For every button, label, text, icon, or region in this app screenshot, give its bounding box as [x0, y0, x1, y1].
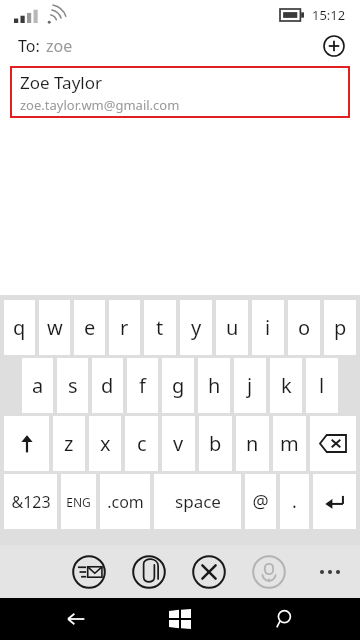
- button[interactable]: .: [280, 474, 309, 529]
- staticText: e: [84, 314, 96, 341]
- staticText: l: [319, 372, 325, 399]
- staticText: r: [120, 314, 129, 341]
- button[interactable]: u: [216, 300, 248, 355]
- staticText: x: [100, 430, 111, 457]
- button[interactable]: Voice input: [250, 553, 288, 591]
- staticText: b: [209, 430, 222, 457]
- button[interactable]: Close: [190, 553, 228, 591]
- staticText: w: [47, 314, 63, 341]
- button[interactable]: k: [270, 358, 302, 413]
- button[interactable]: space: [154, 474, 241, 529]
- button[interactable]: Zoe Taylor: [10, 66, 350, 118]
- staticText: q: [13, 314, 26, 341]
- button[interactable]: p: [324, 300, 356, 355]
- button[interactable]: l: [306, 358, 338, 413]
- button[interactable]: f: [127, 358, 158, 413]
- staticText: @: [252, 489, 269, 514]
- staticText: z: [64, 430, 74, 457]
- button[interactable]: Start: [162, 601, 198, 637]
- button[interactable]: c: [125, 416, 158, 471]
- staticText: s: [68, 372, 78, 399]
- button[interactable]: r: [109, 300, 140, 355]
- button[interactable]: q: [4, 300, 35, 355]
- staticText: ENG: [66, 494, 91, 510]
- staticText: To:: [18, 35, 40, 57]
- staticText: o: [298, 314, 311, 341]
- staticText: zoe.taylor.wm@gmail.com: [20, 96, 180, 114]
- button[interactable]: j: [234, 358, 266, 413]
- button[interactable]: y: [180, 300, 212, 355]
- staticText: k: [281, 372, 292, 399]
- button[interactable]: Back: [58, 601, 94, 637]
- button[interactable]: Backspace: [310, 416, 356, 471]
- staticText: j: [247, 372, 253, 399]
- button[interactable]: More options: [314, 564, 346, 580]
- staticText: d: [101, 372, 114, 399]
- staticText: t: [156, 314, 164, 341]
- button[interactable]: t: [144, 300, 176, 355]
- staticText: g: [172, 372, 185, 399]
- staticText: Zoe Taylor: [20, 71, 103, 94]
- button[interactable]: e: [74, 300, 105, 355]
- button[interactable]: ENG: [61, 474, 96, 529]
- staticText: zoe: [46, 35, 73, 57]
- button[interactable]: b: [199, 416, 232, 471]
- staticText: p: [334, 314, 347, 341]
- button[interactable]: Shift: [4, 416, 49, 471]
- staticText: space: [175, 490, 221, 513]
- button[interactable]: z: [53, 416, 85, 471]
- staticText: a: [32, 372, 44, 399]
- staticText: u: [226, 314, 239, 341]
- button[interactable]: h: [198, 358, 230, 413]
- staticText: f: [139, 372, 146, 399]
- staticText: c: [137, 430, 147, 457]
- staticText: h: [208, 372, 221, 399]
- staticText: 15:12: [312, 6, 346, 24]
- button[interactable]: w: [39, 300, 70, 355]
- staticText: n: [246, 430, 259, 457]
- staticText: &123: [11, 491, 51, 513]
- staticText: y: [191, 314, 202, 341]
- button[interactable]: Send: [70, 553, 108, 591]
- staticText: v: [173, 430, 184, 457]
- button[interactable]: .com: [100, 474, 150, 529]
- button[interactable]: Enter: [313, 474, 356, 529]
- button[interactable]: Add recipient: [320, 32, 348, 60]
- button[interactable]: Search: [266, 601, 302, 637]
- staticText: .com: [107, 491, 144, 513]
- staticText: .: [292, 489, 297, 514]
- button[interactable]: @: [245, 474, 276, 529]
- button[interactable]: n: [236, 416, 269, 471]
- staticText: i: [265, 314, 271, 341]
- button[interactable]: g: [162, 358, 194, 413]
- button[interactable]: v: [162, 416, 195, 471]
- button[interactable]: d: [92, 358, 123, 413]
- button[interactable]: m: [273, 416, 306, 471]
- button[interactable]: x: [89, 416, 121, 471]
- button[interactable]: &123: [4, 474, 57, 529]
- staticText: m: [280, 430, 299, 457]
- button[interactable]: i: [252, 300, 284, 355]
- button[interactable]: a: [22, 358, 53, 413]
- button[interactable]: Attach: [130, 553, 168, 591]
- button[interactable]: s: [57, 358, 88, 413]
- button[interactable]: o: [288, 300, 320, 355]
